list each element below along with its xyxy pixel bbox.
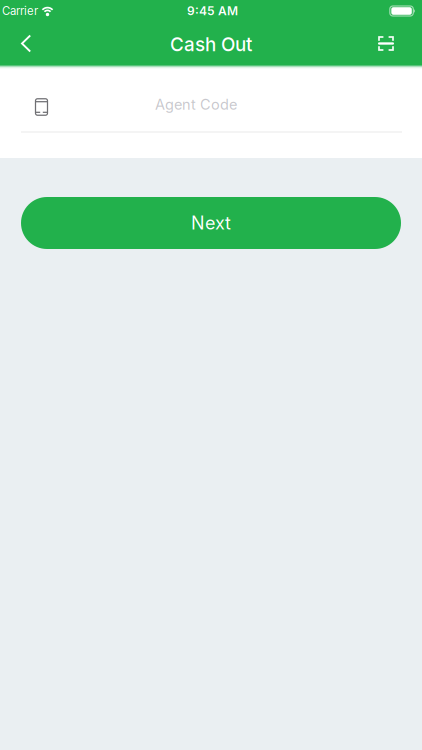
staticText: Next: [191, 212, 231, 234]
staticText: Carrier: [2, 4, 38, 18]
button[interactable]: Next: [21, 197, 401, 249]
staticText: Cash Out: [170, 33, 252, 56]
staticText: 9:45 AM: [187, 4, 238, 18]
button[interactable]: Scan QR code: [364, 22, 422, 65]
staticText: Agent Code: [155, 96, 237, 113]
button[interactable]: Back: [0, 22, 45, 65]
